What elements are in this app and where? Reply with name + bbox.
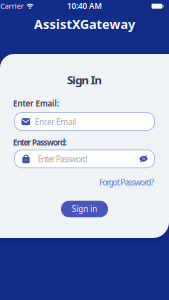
staticText: Carrier <box>0 0 35 16</box>
button[interactable]: Enter Password <box>14 149 155 168</box>
staticText: Enter Email: <box>13 93 105 114</box>
staticText: 10:40 AM <box>49 0 119 17</box>
button[interactable] <box>139 155 148 162</box>
staticText: Sign in <box>59 198 110 220</box>
button[interactable]: Forgot Password? <box>44 172 154 193</box>
button[interactable]: Sign in <box>61 201 108 217</box>
staticText: Enter Password: <box>13 132 120 153</box>
staticText: Sign In <box>49 65 120 95</box>
staticText: AssistXGateway <box>0 7 169 41</box>
staticText: Enter Email <box>14 111 96 132</box>
staticText: Enter Password <box>13 148 112 170</box>
staticText: Forgot Password? <box>44 172 154 193</box>
button[interactable]: Enter Email <box>14 112 155 131</box>
